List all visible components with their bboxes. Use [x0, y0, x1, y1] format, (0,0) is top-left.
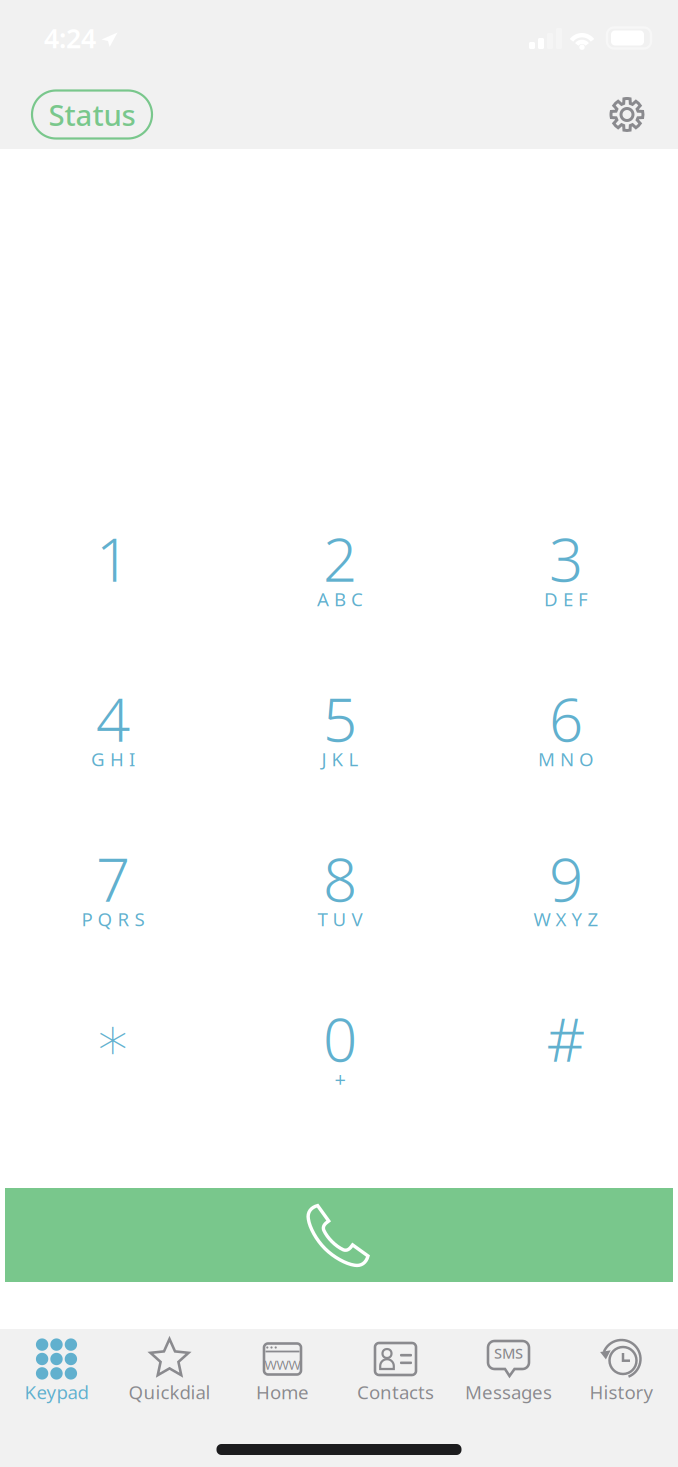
button[interactable]: Settings: [607, 94, 647, 134]
staticText: 7: [96, 839, 130, 918]
button[interactable]: 6: [454, 688, 678, 848]
staticText: Keypad: [24, 1380, 88, 1404]
staticText: 3: [549, 519, 583, 598]
staticText: T U V: [317, 907, 362, 931]
staticText: Home: [256, 1380, 309, 1404]
staticText: 6: [549, 679, 583, 758]
staticText: J K L: [321, 747, 358, 771]
button[interactable]: #: [454, 1008, 678, 1168]
staticText: Messages: [465, 1380, 552, 1404]
button[interactable]: Contacts: [339, 1333, 452, 1411]
button[interactable]: Status: [32, 90, 152, 138]
staticText: +: [334, 1066, 345, 1092]
staticText: Status: [48, 95, 135, 134]
staticText: G H I: [91, 747, 135, 771]
button[interactable]: 0: [226, 1008, 454, 1168]
button[interactable]: Keypad: [0, 1333, 113, 1411]
button[interactable]: History: [565, 1333, 678, 1411]
button[interactable]: 3: [454, 528, 678, 688]
staticText: 2: [323, 519, 357, 598]
staticText: WWW: [264, 1356, 300, 1373]
staticText: W X Y Z: [533, 907, 598, 931]
staticText: Quickdial: [128, 1380, 210, 1404]
staticText: 4: [96, 679, 130, 758]
staticText: SMS: [494, 1343, 523, 1363]
staticText: M N O: [538, 747, 594, 771]
button[interactable]: 1: [0, 528, 226, 688]
staticText: Contacts: [357, 1380, 434, 1404]
button[interactable]: SMS: [452, 1333, 565, 1411]
button[interactable]: 7: [0, 848, 226, 1008]
staticText: 1: [96, 519, 130, 598]
staticText: 0: [323, 999, 357, 1078]
staticText: History: [589, 1380, 653, 1404]
button[interactable]: ∗: [0, 1008, 226, 1168]
button[interactable]: Quickdial: [113, 1333, 226, 1411]
button[interactable]: 9: [454, 848, 678, 1008]
staticText: #: [546, 999, 585, 1078]
staticText: 5: [323, 679, 357, 758]
button[interactable]: WWW: [226, 1333, 339, 1411]
staticText: ∗: [94, 1004, 132, 1073]
staticText: P Q R S: [81, 907, 144, 931]
staticText: 8: [323, 839, 357, 918]
button[interactable]: 4: [0, 688, 226, 848]
button[interactable]: 5: [226, 688, 454, 848]
button[interactable]: 8: [226, 848, 454, 1008]
staticText: 4:24: [44, 20, 96, 56]
staticText: D E F: [544, 587, 588, 611]
staticText: 9: [549, 839, 583, 918]
staticText: A B C: [317, 587, 363, 611]
button[interactable]: Call: [5, 1188, 673, 1282]
button[interactable]: 2: [226, 528, 454, 688]
